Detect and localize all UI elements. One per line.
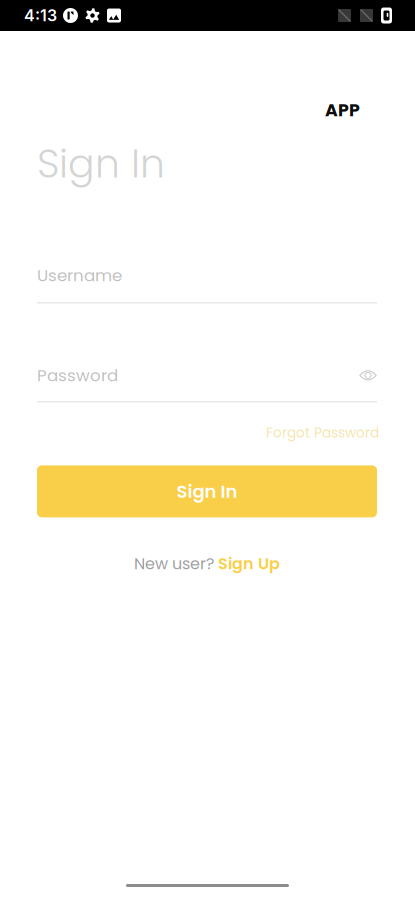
staticText: APP xyxy=(325,98,360,122)
staticText: Username xyxy=(37,264,122,287)
staticText: 4:13 xyxy=(24,6,57,25)
button[interactable]: Sign In xyxy=(37,465,377,517)
staticText: Forgot Password xyxy=(266,423,379,442)
staticText: Password xyxy=(37,364,118,387)
staticText: New user? xyxy=(134,552,218,575)
staticText: Sign In xyxy=(37,136,165,191)
button[interactable]: Forgot Password xyxy=(266,423,379,442)
staticText: Sign In xyxy=(176,479,237,504)
staticText: Sign Up xyxy=(218,552,280,575)
button[interactable]: Sign Up xyxy=(218,552,280,575)
